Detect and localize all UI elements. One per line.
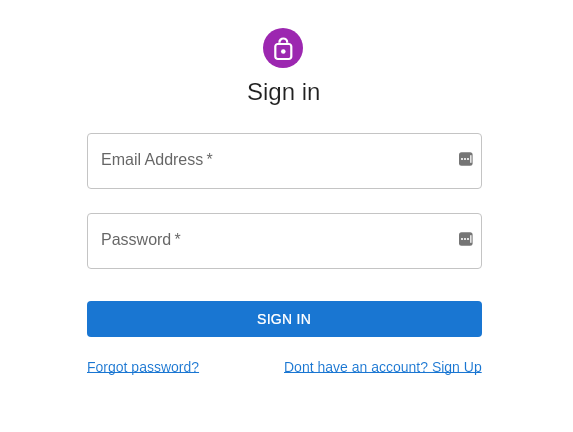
button[interactable]: Forgot password? (87, 359, 200, 375)
button[interactable]: Email Address * (87, 133, 482, 189)
staticText: Sign in (247, 78, 321, 105)
button[interactable]: SIGN IN (87, 301, 482, 337)
staticText: Password * (101, 231, 181, 249)
staticText: Email Address * (101, 151, 213, 169)
staticText: SIGN IN (257, 311, 312, 327)
staticText: Dont have an account? Sign Up (284, 359, 482, 375)
button[interactable]: Password * (87, 213, 482, 269)
staticText: Forgot password? (87, 359, 200, 375)
button[interactable]: Dont have an account? Sign Up (284, 359, 482, 375)
